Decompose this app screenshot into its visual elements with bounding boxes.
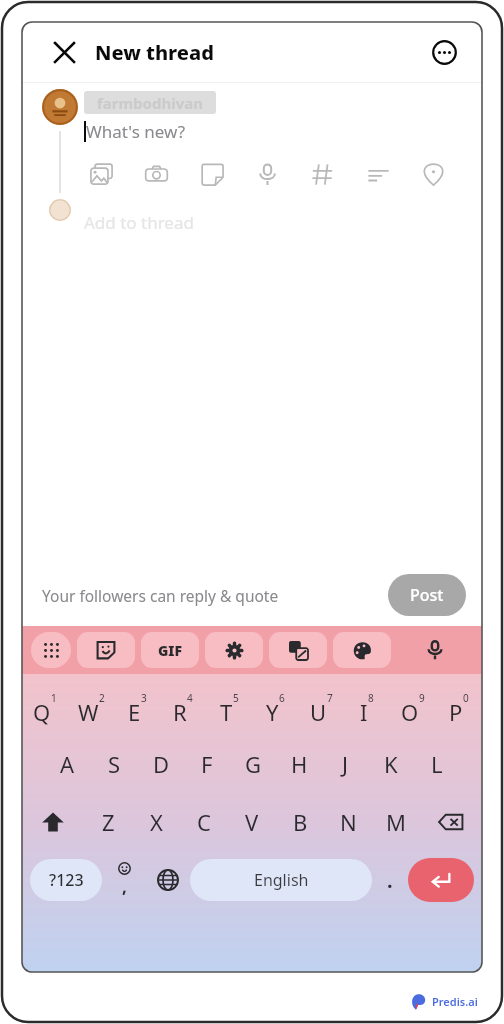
staticText: X (150, 807, 163, 837)
button[interactable]: J (322, 738, 368, 790)
button[interactable]: Emoji (102, 852, 146, 908)
button[interactable]: F (184, 738, 230, 790)
staticText: 0 (463, 691, 469, 705)
staticText: D (153, 749, 170, 779)
staticText: R (173, 697, 187, 727)
button[interactable]: Change language (146, 852, 190, 908)
staticText: M (386, 807, 406, 837)
button[interactable]: S (91, 738, 138, 790)
button[interactable]: Take photo (139, 157, 173, 191)
button[interactable]: Add to thread (84, 211, 194, 234)
button[interactable]: Shift (22, 796, 84, 848)
button[interactable]: A (44, 738, 91, 790)
button[interactable]: Close (46, 34, 82, 70)
staticText: S (108, 749, 121, 779)
button[interactable]: Add location (416, 157, 450, 191)
button[interactable]: R (160, 680, 206, 732)
staticText: N (340, 807, 357, 837)
button[interactable]: Z (84, 796, 132, 848)
button[interactable]: ?123 (30, 859, 102, 901)
staticText: E (128, 697, 141, 727)
button[interactable]: GIF (141, 632, 199, 668)
button[interactable]: Voice input (394, 626, 476, 674)
button[interactable]: Add tag (305, 157, 339, 191)
button[interactable]: Enter (408, 858, 474, 902)
staticText: 1 (51, 691, 57, 705)
button[interactable]: Translate (269, 632, 327, 668)
staticText: Post (410, 584, 444, 606)
staticText: 8 (368, 691, 374, 705)
button[interactable]: T (206, 680, 252, 732)
button[interactable]: X (132, 796, 180, 848)
staticText: Predis.ai (432, 994, 478, 1009)
staticText: G (245, 749, 262, 779)
button[interactable]: More options (426, 34, 462, 70)
staticText: A (60, 749, 75, 779)
button[interactable]: B (276, 796, 324, 848)
button[interactable]: Record audio (250, 157, 284, 191)
button[interactable]: D (138, 738, 184, 790)
staticText: . (387, 867, 393, 894)
staticText: English (254, 869, 309, 891)
staticText: J (342, 749, 349, 779)
staticText: O (401, 697, 419, 727)
staticText: W (78, 697, 99, 727)
button[interactable]: Add GIF (195, 157, 229, 191)
button[interactable]: Add image (84, 157, 118, 191)
staticText: L (431, 749, 443, 779)
button[interactable]: Post (388, 574, 466, 616)
button[interactable]: Create poll (361, 157, 395, 191)
staticText: ?123 (49, 869, 84, 891)
button[interactable]: V (228, 796, 276, 848)
button[interactable]: English (190, 859, 372, 901)
button[interactable]: M (372, 796, 420, 848)
staticText: Z (102, 807, 115, 837)
staticText: farmbodhivan (97, 93, 203, 113)
staticText: T (220, 697, 233, 727)
button[interactable]: Settings (205, 632, 263, 668)
staticText: Y (266, 697, 279, 727)
staticText: C (197, 807, 211, 837)
staticText: , (122, 875, 127, 898)
staticText: Q (33, 697, 51, 727)
staticText: 6 (279, 691, 285, 705)
button[interactable]: Q (22, 680, 68, 732)
staticText: P (449, 697, 463, 727)
button[interactable]: Y (252, 680, 298, 732)
staticText: F (201, 749, 213, 779)
staticText: GIF (158, 641, 183, 660)
button[interactable]: H (276, 738, 322, 790)
staticText: B (293, 807, 308, 837)
button[interactable]: P (436, 680, 482, 732)
staticText: V (245, 807, 259, 837)
button[interactable]: . (372, 852, 408, 908)
button[interactable]: O (390, 680, 436, 732)
staticText: I (360, 697, 368, 727)
staticText: H (291, 749, 308, 779)
button[interactable]: C (180, 796, 228, 848)
button[interactable]: L (414, 738, 460, 790)
staticText: 7 (327, 691, 333, 705)
button[interactable]: Stickers (77, 632, 135, 668)
button[interactable]: W (68, 680, 114, 732)
staticText: 2 (99, 691, 105, 705)
button[interactable]: U (298, 680, 344, 732)
staticText: 5 (233, 691, 239, 705)
button[interactable]: Theme (333, 632, 391, 668)
staticText: What's new? (86, 120, 186, 143)
staticText: 3 (141, 691, 147, 705)
button[interactable]: G (230, 738, 276, 790)
staticText: New thread (95, 39, 214, 66)
button[interactable]: I (344, 680, 390, 732)
staticText: K (384, 749, 398, 779)
button[interactable]: N (324, 796, 372, 848)
button[interactable]: Keyboard apps (31, 632, 71, 668)
button[interactable]: Your followers can reply & quote (42, 585, 279, 606)
button[interactable]: E (114, 680, 160, 732)
staticText: 4 (187, 691, 193, 705)
staticText: U (310, 697, 327, 727)
button[interactable]: Backspace (420, 796, 482, 848)
button[interactable]: K (368, 738, 414, 790)
staticText: 9 (419, 691, 425, 705)
